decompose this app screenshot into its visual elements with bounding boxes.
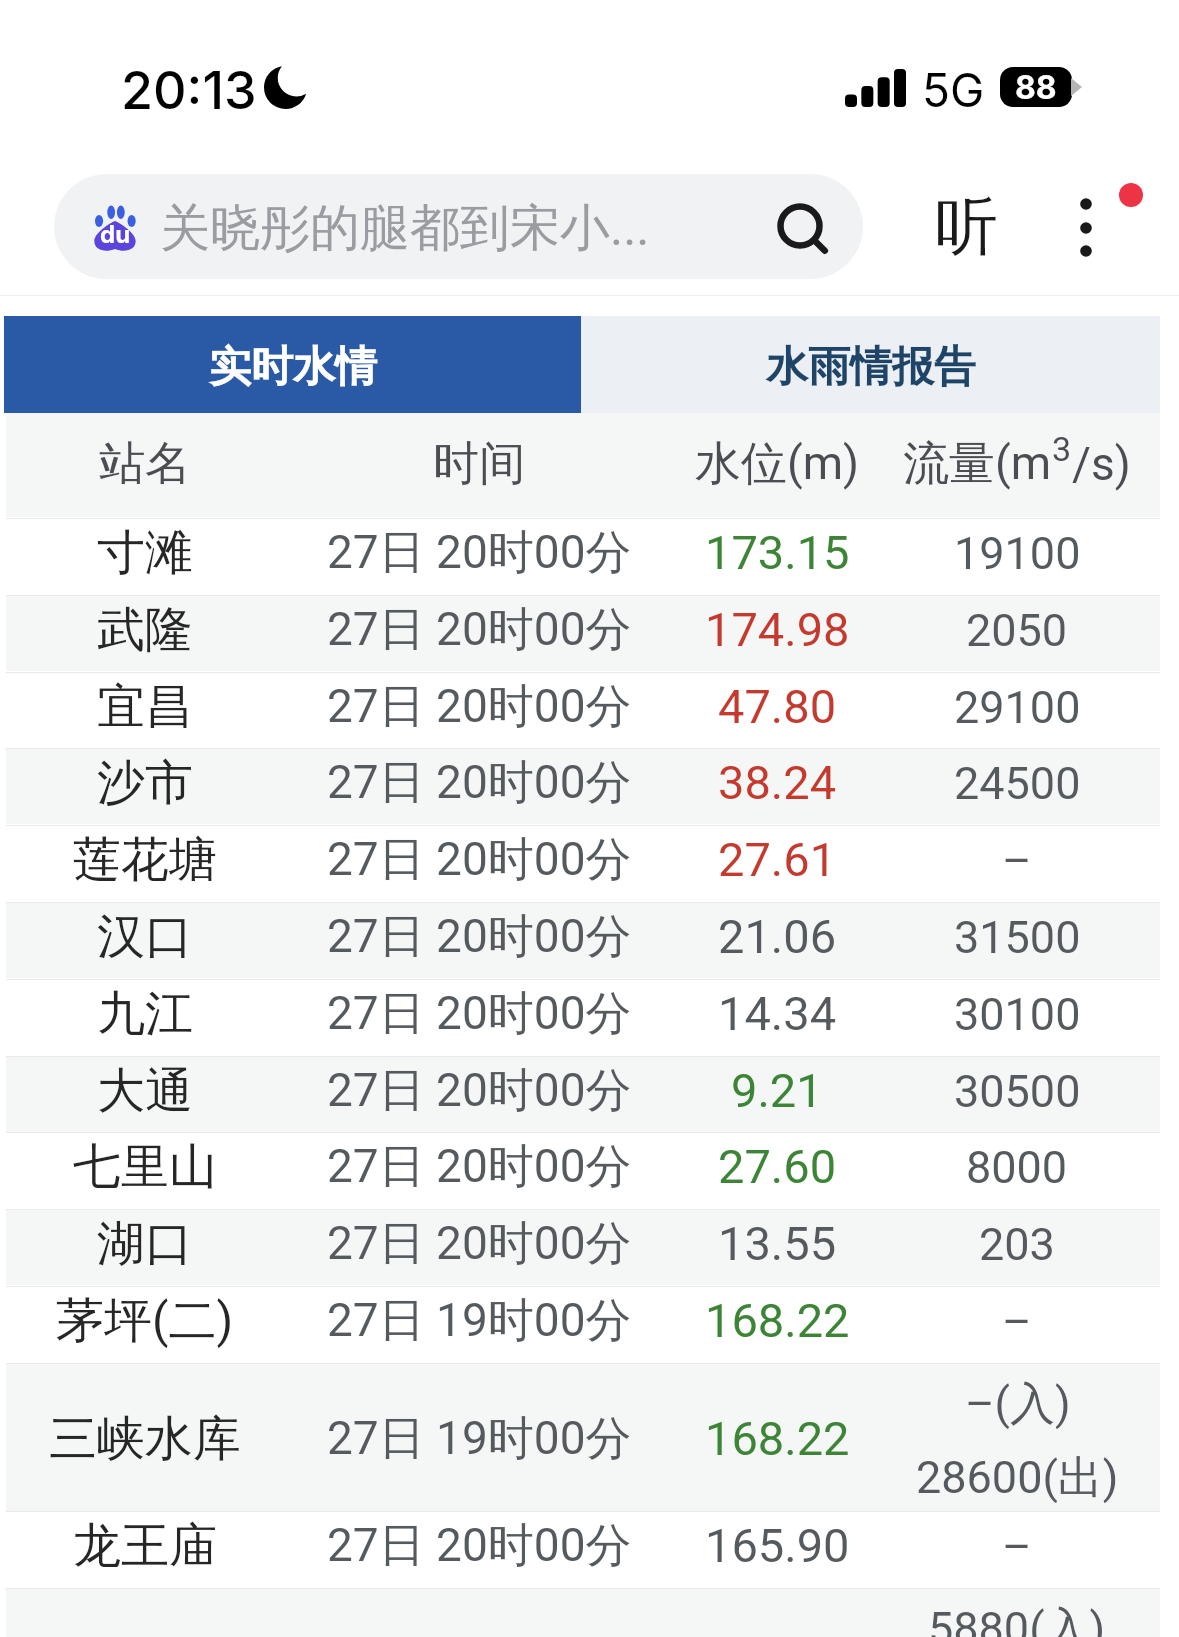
staticText: –(入) [965,1376,1071,1433]
staticText: 九江 [97,984,193,1044]
staticText: 湖口 [97,1214,193,1274]
staticText: 武隆 [97,600,193,660]
staticText: 大通 [97,1061,193,1121]
staticText: 5G [922,62,985,118]
staticText: 27日 20时00分 [327,754,632,812]
staticText: 13.55 [718,1216,837,1271]
staticText: 流量(m [903,435,1052,493]
staticText: – [1002,1520,1032,1573]
staticText: 203 [979,1218,1055,1271]
staticText: 实时水情 [209,341,377,394]
staticText: 27日 20时00分 [327,908,632,966]
staticText: 174.98 [705,602,850,657]
staticText: 24500 [954,757,1081,810]
button[interactable] [6,596,1160,671]
staticText: 27日 19时00分 [327,1292,632,1350]
staticText: /s) [1072,437,1131,491]
button[interactable] [6,1589,1160,1637]
staticText: 165.90 [705,1518,850,1573]
staticText: 27日 20时00分 [327,1215,632,1273]
staticText: 168.22 [705,1411,850,1466]
staticText: 汉口 [97,907,193,967]
staticText: 8000 [966,1141,1068,1194]
staticText: 27日 20时00分 [327,1138,632,1196]
staticText: 29100 [954,681,1081,734]
staticText: 莲花塘 [73,830,217,890]
button[interactable] [6,1287,1160,1362]
staticText: 2050 [966,604,1068,657]
staticText: 27日 20时00分 [327,601,632,659]
staticText: 水位(m) [695,435,860,493]
button[interactable] [6,1057,1160,1132]
staticText: 龙王庙 [73,1516,217,1576]
staticText: 30100 [954,988,1081,1041]
staticText: 9.21 [731,1063,823,1118]
staticText: 30500 [954,1065,1081,1118]
staticText: 14.34 [718,986,837,1041]
staticText: 听 [935,187,998,266]
button[interactable]: 实时水情 [4,316,581,413]
staticText: 21.06 [718,909,837,964]
staticText: 水雨情报告 [766,341,976,394]
staticText: 20:13 [121,59,257,122]
staticText: 28600(出) [916,1450,1119,1507]
button[interactable] [6,673,1160,748]
staticText: 关晓彤的腿都到宋小... [160,197,774,260]
staticText: 38.24 [718,755,837,810]
staticText: 27日 20时00分 [327,1062,632,1120]
button[interactable] [6,980,1160,1055]
staticText: 27.60 [718,1139,837,1194]
staticText: 站名 [99,435,191,493]
button[interactable] [6,1512,1160,1587]
staticText: 168.22 [705,1293,850,1348]
button[interactable] [6,903,1160,978]
staticText: 173.15 [705,525,850,580]
button[interactable]: du [54,174,863,279]
button[interactable]: Search [774,198,832,256]
staticText: 寸滩 [97,523,193,583]
staticText: 47.80 [718,679,837,734]
button[interactable] [6,1364,1160,1511]
staticText: 27日 20时00分 [327,524,632,582]
staticText: – [1002,834,1032,887]
button[interactable] [6,749,1160,824]
button[interactable]: 水雨情报告 [581,316,1160,413]
button[interactable] [6,519,1160,594]
staticText: 27日 20时00分 [327,985,632,1043]
staticText: – [1002,1295,1032,1348]
staticText: 27日 20时00分 [327,678,632,736]
staticText: 27.61 [718,832,837,887]
staticText: 31500 [954,911,1081,964]
button[interactable] [6,1133,1160,1208]
staticText: 时间 [433,435,525,493]
staticText: 27日 19时00分 [327,1410,632,1468]
staticText: 88 [1015,68,1057,107]
staticText: 3 [1052,429,1072,469]
staticText: 七里山 [73,1137,217,1197]
button[interactable]: 听 [906,174,1026,279]
button[interactable]: More options [1043,174,1133,279]
button[interactable] [6,826,1160,901]
staticText: 茅坪(二) [56,1291,234,1351]
staticText: 沙市 [97,753,193,813]
staticText: 5880(入) [928,1601,1106,1637]
staticText: 27日 20时00分 [327,831,632,889]
button[interactable] [6,1210,1160,1285]
staticText: 三峡水库 [49,1409,241,1469]
staticText: 27日 20时00分 [327,1517,632,1575]
staticText: 19100 [954,527,1081,580]
staticText: du [100,220,131,249]
staticText: 宜昌 [97,677,193,737]
